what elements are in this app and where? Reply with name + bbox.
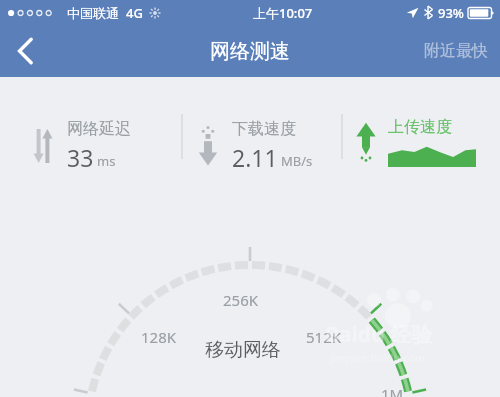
button[interactable]: 附近最快 bbox=[420, 31, 492, 71]
staticText: 移动网络 bbox=[205, 338, 281, 362]
staticText: 网络测速 bbox=[210, 39, 290, 64]
staticText: 上午10:07 bbox=[253, 4, 313, 22]
staticText: 256K bbox=[223, 290, 259, 310]
staticText: jingyan.baidu.com bbox=[330, 350, 426, 365]
staticText: 附近最快 bbox=[424, 41, 488, 61]
staticText: 93% bbox=[438, 4, 464, 22]
staticText: 4G bbox=[126, 4, 143, 22]
staticText: 下载速度 bbox=[232, 119, 296, 139]
staticText: 上传速度 bbox=[388, 117, 452, 137]
staticText: 33 bbox=[67, 142, 94, 173]
staticText: 中国联通 bbox=[67, 5, 119, 21]
staticText: 网络延迟 bbox=[67, 119, 131, 139]
staticText: ms bbox=[97, 152, 116, 170]
staticText: 2.11 bbox=[232, 142, 278, 173]
staticText: 128K bbox=[141, 327, 177, 347]
staticText: 512K bbox=[306, 327, 342, 347]
button[interactable]: Back bbox=[0, 25, 50, 77]
staticText: Baidu 经验 bbox=[325, 320, 433, 349]
staticText: 1M bbox=[381, 384, 404, 397]
staticText: MB/s bbox=[281, 152, 313, 170]
